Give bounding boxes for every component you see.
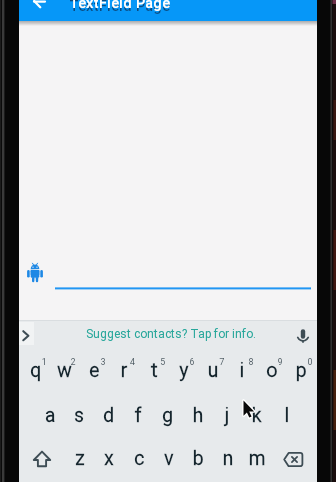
button[interactable] — [293, 324, 315, 344]
button[interactable] — [95, 322, 245, 344]
button[interactable] — [64, 437, 94, 480]
button[interactable] — [124, 437, 154, 480]
button[interactable] — [124, 394, 154, 437]
button[interactable] — [168, 351, 198, 394]
button[interactable] — [64, 394, 94, 437]
button[interactable] — [287, 351, 317, 394]
button[interactable] — [153, 437, 183, 480]
button[interactable] — [27, 437, 57, 480]
button[interactable] — [80, 351, 110, 394]
button[interactable] — [228, 351, 258, 394]
button[interactable] — [257, 351, 287, 394]
button[interactable] — [26, 256, 316, 294]
button[interactable] — [94, 394, 124, 437]
button[interactable] — [94, 437, 124, 480]
button[interactable] — [198, 351, 228, 394]
button[interactable] — [212, 437, 242, 480]
button[interactable] — [20, 351, 50, 394]
button[interactable] — [35, 394, 65, 437]
button[interactable] — [19, 322, 34, 345]
button[interactable] — [212, 394, 242, 437]
button[interactable] — [242, 437, 272, 480]
button[interactable] — [139, 351, 169, 394]
button[interactable] — [183, 394, 213, 437]
button[interactable] — [50, 351, 80, 394]
button[interactable] — [153, 394, 183, 437]
button[interactable] — [278, 437, 308, 480]
button[interactable] — [26, 0, 52, 16]
button[interactable] — [242, 394, 272, 437]
button[interactable] — [272, 394, 302, 437]
button[interactable] — [183, 437, 213, 480]
button[interactable] — [109, 351, 139, 394]
